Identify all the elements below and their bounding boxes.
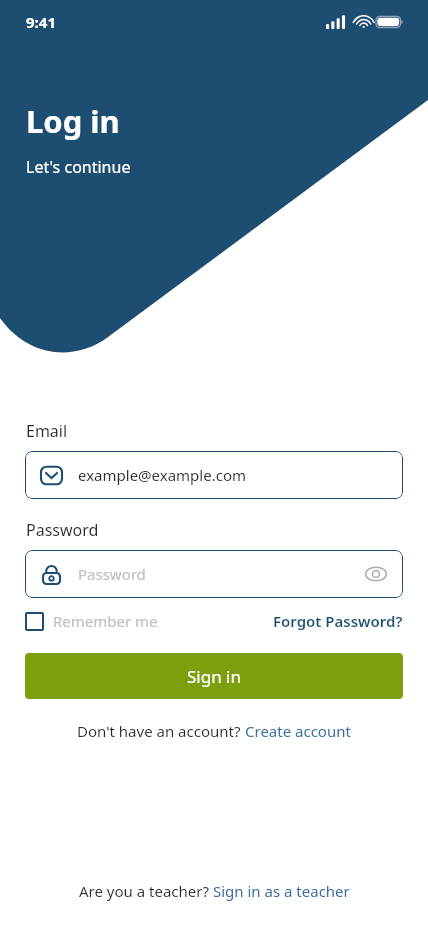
button[interactable]: Remember me bbox=[25, 611, 158, 631]
button[interactable]: Forgot Password? bbox=[273, 611, 403, 631]
button[interactable]: Password bbox=[25, 550, 403, 598]
button[interactable]: example@example.com bbox=[25, 451, 403, 499]
button[interactable]: Create account bbox=[245, 721, 351, 741]
staticText: Sign in bbox=[187, 665, 241, 688]
button[interactable]: Sign in bbox=[25, 653, 403, 699]
staticText: Remember me bbox=[53, 611, 158, 631]
staticText: Don't have an account? bbox=[77, 721, 245, 741]
staticText: Email bbox=[26, 420, 68, 442]
staticText: example@example.com bbox=[78, 465, 246, 485]
button[interactable]: Show password bbox=[363, 561, 389, 587]
staticText: Are you a teacher? bbox=[79, 881, 213, 901]
staticText: Forgot Password? bbox=[273, 611, 403, 631]
staticText: Password bbox=[26, 519, 99, 541]
staticText: Let's continue bbox=[26, 156, 131, 178]
staticText: Sign in as a teacher bbox=[213, 881, 350, 901]
staticText: 9:41 bbox=[26, 12, 56, 32]
staticText: Password bbox=[78, 564, 146, 584]
button[interactable]: Sign in as a teacher bbox=[213, 881, 350, 901]
staticText: Create account bbox=[245, 721, 351, 741]
staticText: Log in bbox=[26, 100, 120, 142]
